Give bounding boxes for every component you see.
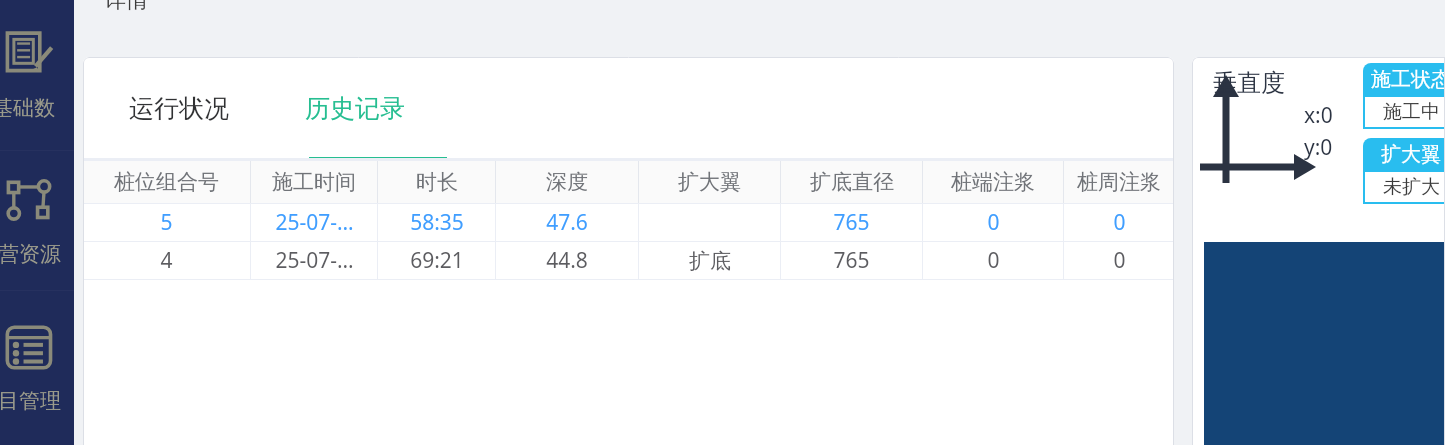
staticText: 25-07-…: [275, 208, 354, 237]
button[interactable]: 运行状况: [125, 83, 233, 134]
staticText: 扩底: [689, 248, 731, 274]
staticText: 0: [987, 208, 1000, 237]
staticText: 详情: [104, 0, 148, 14]
button[interactable]: 目管理: [0, 291, 74, 445]
staticText: 施工状态: [1371, 67, 1445, 92]
staticText: 0: [1113, 208, 1126, 237]
staticText: 0: [987, 246, 1000, 275]
staticText: 扩大翼: [678, 169, 741, 195]
staticText: 时长: [416, 169, 458, 195]
button[interactable]: 施工状态: [1363, 63, 1445, 129]
staticText: 运行状况: [129, 93, 229, 124]
staticText: x:0: [1304, 101, 1333, 130]
staticText: 25-07-…: [275, 246, 354, 275]
staticText: y:0: [1304, 133, 1333, 162]
button[interactable]: 扩大翼: [1363, 138, 1445, 204]
staticText: 765: [833, 208, 870, 237]
button[interactable]: 5: [83, 204, 1174, 241]
staticText: 历史记录: [305, 93, 405, 124]
staticText: 58:35: [410, 208, 464, 237]
button[interactable]: 4: [83, 242, 1174, 279]
staticText: 桩周注浆: [1077, 169, 1161, 195]
staticText: 桩端注浆: [951, 169, 1035, 195]
staticText: 765: [833, 246, 870, 275]
staticText: 扩大翼: [1381, 142, 1441, 167]
staticText: 施工中: [1383, 100, 1440, 124]
staticText: 4: [160, 246, 173, 275]
staticText: 深度: [546, 169, 588, 195]
staticText: 基础数据: [0, 95, 66, 121]
staticText: 营资源: [0, 241, 61, 267]
staticText: 0: [1113, 246, 1126, 275]
staticText: 44.8: [546, 246, 588, 275]
staticText: 5: [160, 208, 173, 237]
staticText: 垂直度: [1213, 68, 1285, 98]
button[interactable]: 历史记录: [301, 83, 409, 134]
button[interactable]: 营资源: [0, 151, 74, 290]
staticText: 扩底直径: [810, 169, 894, 195]
staticText: 目管理: [0, 388, 61, 414]
button[interactable]: 基础数据: [0, 0, 74, 150]
staticText: 施工时间: [272, 169, 356, 195]
staticText: 未扩大: [1383, 175, 1440, 199]
staticText: 47.6: [546, 208, 588, 237]
staticText: 69:21: [410, 246, 464, 275]
staticText: 桩位组合号: [114, 169, 219, 195]
